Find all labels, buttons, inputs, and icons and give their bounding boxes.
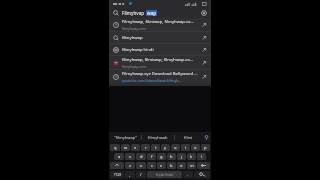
staticText: i [185, 145, 187, 150]
button[interactable]: Filmyhwap, filmiwap, filmyhwap.co... [109, 18, 211, 31]
button[interactable]: Insert suggestion [201, 47, 207, 53]
staticText: Filmyhwap.xyz Download Bollywood Mo... [122, 71, 199, 77]
button[interactable]: n [177, 162, 186, 169]
staticText: z [129, 163, 131, 168]
button[interactable]: c [147, 162, 156, 169]
button[interactable]: Insert suggestion [201, 35, 207, 41]
staticText: y [164, 145, 167, 150]
button[interactable]: filmyhwap, filmiwap, filmyhwap.co... [109, 56, 211, 69]
staticText: e [134, 145, 137, 150]
staticText: l [201, 154, 203, 159]
staticText: wap [147, 10, 156, 16]
button[interactable]: p [201, 144, 210, 151]
button[interactable]: v [157, 162, 166, 169]
button[interactable]: u [171, 144, 180, 151]
button[interactable]: e [131, 144, 140, 151]
button[interactable]: f [147, 153, 156, 160]
button[interactable]: Backspace [197, 162, 210, 169]
button[interactable]: s [125, 153, 135, 160]
button[interactable]: q [110, 144, 120, 151]
button[interactable]: r [141, 144, 150, 151]
button[interactable]: , [125, 171, 135, 178]
button[interactable]: w [121, 144, 130, 151]
button[interactable]: "filmyhwap" [109, 132, 141, 142]
button[interactable]: x [136, 162, 146, 169]
staticText: filmyhwap [122, 35, 143, 41]
button[interactable]: Search [109, 7, 211, 18]
staticText: p [204, 145, 207, 150]
staticText: s [129, 154, 131, 159]
button[interactable]: Insert suggestion [201, 22, 207, 28]
button[interactable]: t [151, 144, 160, 151]
staticText: v [160, 163, 163, 168]
staticText: Filmyhvap [122, 10, 145, 16]
button[interactable]: filmyhwap hindi [109, 44, 211, 55]
button[interactable]: j [177, 153, 186, 160]
button[interactable]: filmyhwab [142, 132, 174, 142]
button[interactable]: filmyhwap [109, 32, 211, 43]
button[interactable]: Search [194, 171, 210, 178]
button[interactable]: filmi [175, 132, 202, 142]
staticText: w [124, 145, 128, 150]
staticText: filmyhwap hindi [122, 47, 154, 53]
button[interactable]: z [125, 162, 135, 169]
button[interactable]: / [136, 171, 146, 178]
button[interactable]: y [161, 144, 170, 151]
staticText: d [140, 154, 143, 159]
button[interactable]: m [187, 162, 196, 169]
button[interactable]: g [157, 153, 166, 160]
staticText: filmyhwap.com [122, 26, 147, 31]
staticText: / [140, 172, 142, 177]
button[interactable]: i [181, 144, 190, 151]
button[interactable]: Clear [201, 10, 207, 16]
staticText: k [190, 154, 193, 159]
staticText: b [170, 163, 173, 168]
button[interactable]: Keyboard settings [202, 132, 211, 142]
staticText: English (India) [156, 173, 174, 177]
staticText: x [140, 163, 143, 168]
staticText: r [145, 145, 147, 150]
staticText: a [118, 154, 121, 159]
staticText: filmyhwap, filmiwap, filmyhwap.co... [122, 57, 194, 63]
other: Search [113, 10, 119, 16]
staticText: filmyhwap.com [122, 64, 147, 69]
staticText: j [181, 154, 183, 159]
button[interactable]: d [136, 153, 146, 160]
staticText: q [114, 145, 117, 150]
button[interactable]: a [114, 153, 124, 160]
button[interactable]: o [191, 144, 200, 151]
button[interactable]: Insert suggestion [201, 74, 207, 80]
button[interactable]: ?123 [110, 171, 124, 178]
staticText: o [194, 145, 197, 150]
button[interactable]: Insert suggestion [201, 60, 207, 66]
staticText: , [129, 172, 131, 177]
staticText: t [155, 145, 157, 150]
button[interactable]: l [197, 153, 206, 160]
staticText: g [160, 154, 163, 159]
staticText: f [151, 154, 153, 159]
button[interactable]: English (India) [147, 171, 182, 178]
staticText: filmi [184, 135, 193, 140]
button[interactable]: b [167, 162, 176, 169]
button[interactable]: Filmyhwap.xyz Download Bollywood Mo... [109, 70, 211, 83]
staticText: Filmyhwap, filmiwap, filmyhwap.co... [122, 19, 194, 25]
staticText: u [174, 145, 177, 150]
staticText: n [180, 163, 183, 168]
button[interactable]: Shift [110, 162, 124, 169]
staticText: filmyhwab [148, 135, 168, 140]
staticText: . [187, 172, 189, 177]
staticText: m [190, 163, 194, 168]
button[interactable]: k [187, 153, 196, 160]
button[interactable]: h [167, 153, 176, 160]
staticText: ?123 [114, 173, 121, 177]
staticText: c [151, 163, 153, 168]
staticText: h [170, 154, 173, 159]
button[interactable]: . [183, 171, 193, 178]
staticText: yoututbe.com/channel/watch/fmyh... [122, 78, 181, 83]
staticText: "filmyhwap" [114, 135, 137, 140]
